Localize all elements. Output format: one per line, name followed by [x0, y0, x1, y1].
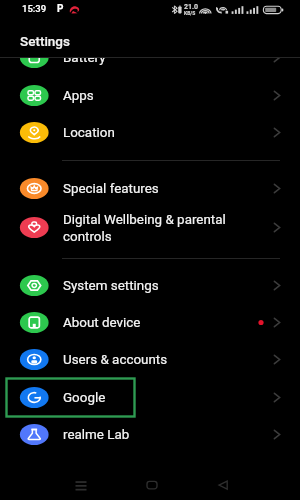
staticText: Settings: [20, 33, 70, 49]
button[interactable]: Users & accounts: [0, 341, 300, 378]
button[interactable]: Battery: [0, 57, 300, 76]
staticText: Users & accounts: [63, 352, 168, 368]
button[interactable]: Back: [202, 466, 246, 500]
staticText: Apps: [63, 88, 94, 104]
staticText: About device: [63, 315, 141, 331]
staticText: 21.0: [184, 3, 199, 11]
button[interactable]: System settings: [0, 267, 300, 304]
staticText: Special features: [63, 181, 159, 197]
staticText: System settings: [63, 278, 159, 294]
staticText: realme Lab: [63, 427, 130, 443]
button[interactable]: About device: [0, 304, 300, 341]
button[interactable]: Location: [0, 114, 300, 151]
button[interactable]: Home: [130, 466, 174, 500]
staticText: Google: [63, 390, 106, 406]
button[interactable]: realme Lab: [0, 416, 300, 453]
staticText: Battery: [63, 57, 106, 66]
button[interactable]: Recent apps: [59, 466, 103, 500]
button[interactable]: Apps: [0, 77, 300, 114]
staticText: 15:39: [22, 3, 47, 14]
staticText: Location: [63, 125, 115, 141]
staticText: KB/S: [184, 10, 196, 16]
button[interactable]: Special features: [0, 170, 300, 207]
staticText: Digital Wellbeing & parental controls: [63, 212, 226, 244]
staticText: P: [57, 3, 64, 15]
button[interactable]: Google: [0, 379, 300, 416]
button[interactable]: Digital Wellbeing & parental controls: [0, 207, 300, 248]
